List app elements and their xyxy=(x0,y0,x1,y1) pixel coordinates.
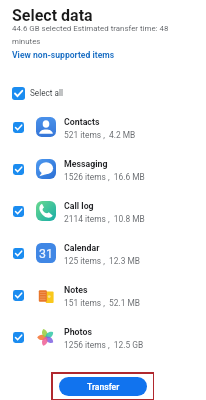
staticText: Contacts xyxy=(64,117,100,127)
button[interactable]: View non-supported items xyxy=(12,50,115,60)
staticText: 1526 items , 16.6 MB xyxy=(64,172,145,182)
staticText: Select data xyxy=(12,6,93,25)
button[interactable]: Select all xyxy=(0,81,206,105)
button[interactable]: Select Messaging xyxy=(13,164,24,175)
staticText: Photos xyxy=(64,327,92,337)
button[interactable]: Select Calendar xyxy=(0,232,206,274)
button[interactable]: Select Contacts xyxy=(13,122,24,133)
button[interactable]: Select Call log xyxy=(13,206,24,217)
button[interactable]: Select Photos xyxy=(0,316,206,358)
staticText: 125 items , 12.3 MB xyxy=(64,256,141,266)
button[interactable]: Select Calendar xyxy=(13,248,24,259)
staticText: Transfer xyxy=(87,382,120,392)
button[interactable]: Select Messaging xyxy=(0,148,206,190)
button[interactable]: Transfer xyxy=(59,377,147,396)
staticText: 151 items , 52.1 MB xyxy=(64,298,141,308)
staticText: 1256 items , 12.5 GB xyxy=(64,340,144,350)
button[interactable]: Select Notes xyxy=(13,290,24,301)
staticText: 521 items , 4.2 MB xyxy=(64,130,136,140)
staticText: Calendar xyxy=(64,243,100,253)
button[interactable]: Select all xyxy=(12,87,25,100)
staticText: Call log xyxy=(64,201,94,211)
staticText: 2114 items , 10.8 MB xyxy=(64,214,145,224)
staticText: Select all xyxy=(30,88,63,98)
button[interactable]: Select Notes xyxy=(0,274,206,316)
staticText: Messaging xyxy=(64,159,108,169)
staticText: 44.6 GB selected Estimated transfer time… xyxy=(12,24,174,46)
staticText: Notes xyxy=(64,285,88,295)
button[interactable]: Select Photos xyxy=(13,332,24,343)
staticText: 31 xyxy=(39,246,53,261)
button[interactable]: Select Call log xyxy=(0,190,206,232)
button[interactable]: Select Contacts xyxy=(0,106,206,148)
